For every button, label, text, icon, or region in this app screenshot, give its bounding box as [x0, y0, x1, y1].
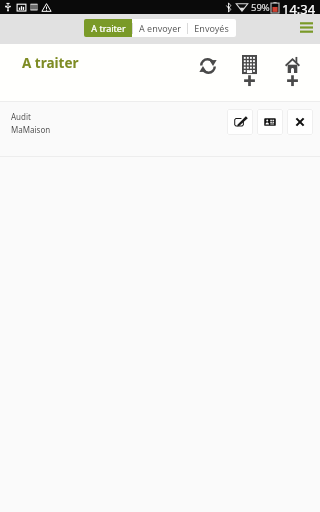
- button[interactable]: A envoyer: [132, 19, 187, 37]
- button[interactable]: Refresh: [192, 50, 223, 81]
- staticText: A traiter: [22, 54, 79, 72]
- staticText: A envoyer: [139, 22, 181, 34]
- button[interactable]: Envoyés: [187, 19, 236, 37]
- staticText: 59%: [251, 1, 270, 14]
- button[interactable]: Menu: [299, 20, 313, 34]
- staticText: 14:34: [282, 0, 316, 14]
- button[interactable]: Edit: [227, 109, 253, 135]
- staticText: Envoyés: [194, 22, 229, 34]
- button[interactable]: Add house: [276, 55, 309, 86]
- staticText: Audit: [11, 111, 31, 122]
- staticText: A traiter: [91, 22, 126, 34]
- button[interactable]: Delete: [287, 109, 313, 135]
- button[interactable]: Contact: [257, 109, 283, 135]
- button[interactable]: Audit: [0, 102, 320, 156]
- button[interactable]: A traiter: [84, 19, 132, 37]
- button[interactable]: Add building: [233, 55, 266, 86]
- staticText: MaMaison: [11, 124, 51, 135]
